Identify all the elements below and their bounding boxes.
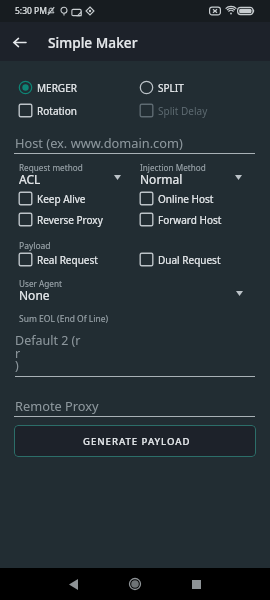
staticText: Simple Maker	[48, 33, 138, 52]
button[interactable]: Default 2 (r r )	[15, 332, 255, 373]
staticText: MERGER	[37, 81, 77, 95]
button[interactable]: Keep Alive	[17, 188, 86, 208]
staticText: Injection Method	[140, 162, 206, 173]
button[interactable]: Back	[6, 29, 32, 55]
staticText: None	[19, 287, 50, 303]
button[interactable]: Forward Host	[138, 209, 222, 229]
staticText: Real Request	[37, 253, 98, 267]
staticText: Dual Request	[158, 253, 221, 267]
staticText: 5:30 PM	[15, 5, 47, 17]
button[interactable]: Reverse Proxy	[17, 209, 103, 229]
staticText: Online Host	[158, 192, 214, 206]
staticText: ACL	[19, 171, 41, 187]
staticText: Keep Alive	[37, 192, 86, 206]
button[interactable]: Host (ex. www.domain.com)	[14, 134, 255, 154]
button[interactable]: Remote Proxy	[14, 397, 255, 417]
button[interactable]: Dual Request	[138, 249, 221, 269]
staticText: Request method	[19, 162, 83, 173]
button[interactable]: GENERATE PAYLOAD	[14, 425, 256, 457]
button[interactable]: Recents	[182, 570, 210, 598]
staticText: User Agent	[19, 278, 62, 289]
staticText: Default 2 (r r )	[15, 332, 81, 373]
staticText: Host (ex. www.domain.com)	[15, 134, 183, 151]
button[interactable]: Injection Method	[140, 161, 243, 187]
staticText: Normal	[140, 171, 183, 187]
button[interactable]: Home	[121, 570, 149, 598]
button[interactable]: SPLIT	[138, 77, 184, 97]
staticText: Payload	[19, 240, 51, 252]
staticText: Reverse Proxy	[37, 213, 103, 227]
button[interactable]: Request method	[19, 161, 122, 187]
button[interactable]: Real Request	[17, 249, 98, 269]
staticText: Sum EOL (End Of Line)	[19, 313, 109, 325]
button[interactable]: User Agent	[19, 277, 244, 303]
staticText: Forward Host	[158, 213, 222, 227]
staticText: GENERATE PAYLOAD	[83, 435, 191, 448]
button[interactable]: Split Delay	[138, 100, 208, 120]
button[interactable]: Back	[59, 570, 87, 598]
button[interactable]: Rotation	[17, 100, 77, 120]
button[interactable]: Online Host	[138, 188, 214, 208]
staticText: Split Delay	[158, 104, 208, 118]
staticText: SPLIT	[158, 81, 184, 95]
button[interactable]: MERGER	[17, 77, 77, 97]
staticText: Remote Proxy	[15, 397, 99, 414]
staticText: Rotation	[37, 104, 77, 118]
